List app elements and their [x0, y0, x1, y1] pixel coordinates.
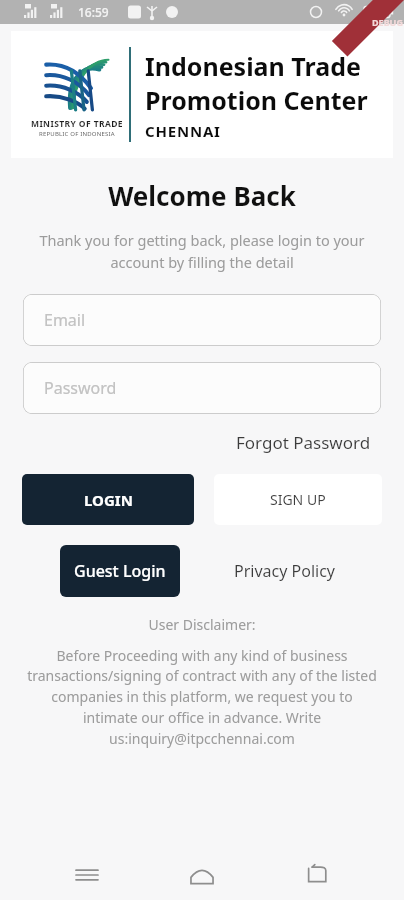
- button[interactable]: Privacy Policy: [230, 556, 339, 586]
- staticText: Before Proceeding with any kind of busin…: [25, 646, 379, 749]
- staticText: User Disclaimer:: [0, 615, 404, 634]
- staticText: Forgot Password: [236, 431, 371, 454]
- staticText: Guest Login: [74, 560, 166, 582]
- button[interactable]: Home: [174, 850, 230, 900]
- staticText: Promotion Center: [145, 83, 368, 117]
- staticText: MINISTRY OF TRADE: [31, 118, 123, 130]
- staticText: SIGN UP: [270, 490, 326, 509]
- staticText: Email: [44, 309, 86, 331]
- button[interactable]: Guest Login: [60, 545, 180, 597]
- staticText: REPUBLIC OF INDONESIA: [39, 130, 115, 138]
- button[interactable]: Back: [289, 850, 345, 900]
- staticText: 16:59: [78, 4, 109, 20]
- button[interactable]: SIGN UP: [214, 474, 382, 525]
- staticText: Welcome Back: [0, 178, 404, 213]
- button[interactable]: Email: [23, 294, 381, 346]
- staticText: DEBUG: [372, 16, 403, 28]
- button[interactable]: LOGIN: [22, 474, 194, 525]
- staticText: LOGIN: [84, 490, 133, 510]
- button[interactable]: Password: [23, 362, 381, 414]
- staticText: Thank you for getting back, please login…: [26, 230, 378, 272]
- staticText: Indonesian Trade: [145, 49, 361, 83]
- staticText: Privacy Policy: [234, 560, 335, 582]
- button[interactable]: Recent apps: [59, 850, 115, 900]
- button[interactable]: Forgot Password: [232, 427, 375, 458]
- staticText: CHENNAI: [145, 121, 221, 141]
- staticText: Password: [44, 377, 117, 399]
